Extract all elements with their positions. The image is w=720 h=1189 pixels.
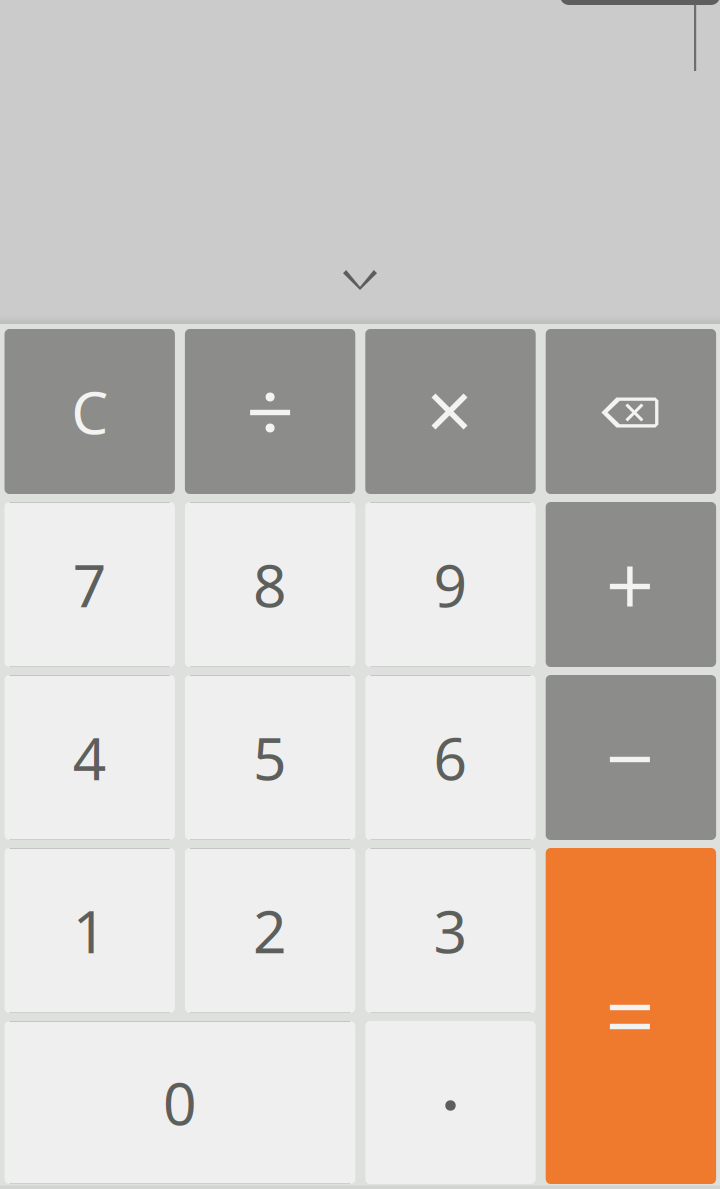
button[interactable]: Decimal point xyxy=(365,1021,536,1184)
staticText: 2 xyxy=(253,891,287,969)
button[interactable]: 0 xyxy=(4,1021,355,1184)
staticText: 4 xyxy=(73,718,107,796)
button[interactable]: 1 xyxy=(4,848,175,1013)
button[interactable]: Clear xyxy=(4,329,175,494)
button[interactable]: Plus xyxy=(546,502,716,667)
button[interactable]: Backspace xyxy=(546,329,716,494)
staticText: 6 xyxy=(433,718,467,796)
button[interactable]: 7 xyxy=(4,502,175,667)
button[interactable]: Equals xyxy=(546,848,716,1184)
staticText: 3 xyxy=(433,891,467,969)
button[interactable]: 4 xyxy=(4,675,175,840)
staticText: 8 xyxy=(253,545,287,623)
button[interactable]: Multiply xyxy=(365,329,536,494)
staticText: 1 xyxy=(73,891,107,969)
button[interactable]: Hide keyboard xyxy=(312,250,408,310)
button[interactable]: 3 xyxy=(365,848,536,1013)
staticText: 0 xyxy=(163,1063,197,1141)
staticText: C xyxy=(71,372,108,450)
button[interactable]: 6 xyxy=(365,675,536,840)
staticText: 5 xyxy=(253,718,287,796)
button[interactable]: 9 xyxy=(365,502,536,667)
button[interactable]: 8 xyxy=(185,502,355,667)
staticText: 7 xyxy=(73,545,107,623)
button[interactable]: Minus xyxy=(546,675,716,840)
button[interactable]: 2 xyxy=(185,848,355,1013)
button[interactable]: 5 xyxy=(185,675,355,840)
button[interactable]: Divide xyxy=(185,329,355,494)
staticText: 9 xyxy=(433,545,467,623)
